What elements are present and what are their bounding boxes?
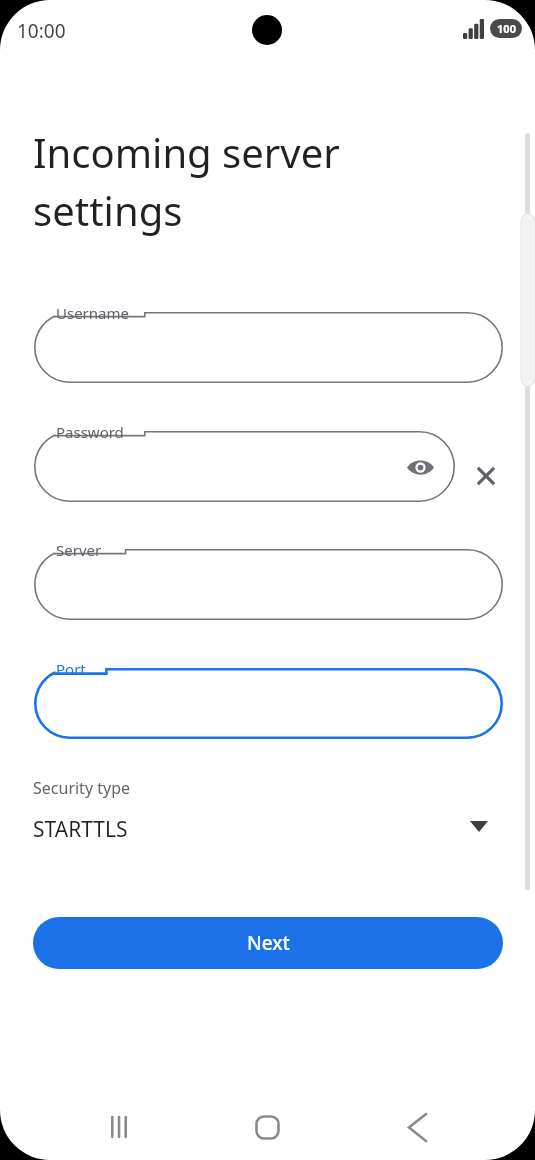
button[interactable]: Password (34, 431, 455, 502)
staticText: Next (247, 930, 290, 956)
staticText: Port (56, 659, 86, 679)
staticText: Incoming server settings (33, 125, 340, 237)
button[interactable]: Home (227, 1087, 307, 1160)
staticText: STARTTLS (33, 815, 128, 844)
staticText: Security type (33, 777, 131, 799)
button[interactable]: Port (34, 668, 503, 739)
button[interactable]: Clear password (465, 455, 507, 497)
button[interactable]: Back (377, 1087, 457, 1160)
button[interactable]: Recent apps (79, 1087, 159, 1160)
button[interactable]: Security type (20, 768, 515, 858)
staticText: 10:00 (17, 18, 66, 44)
staticText: Password (56, 422, 124, 442)
button[interactable]: Server (34, 549, 503, 620)
button[interactable]: Username (34, 312, 503, 383)
button[interactable]: Show password (398, 445, 442, 489)
staticText: 100 (497, 21, 516, 36)
button[interactable]: Next (33, 917, 503, 969)
staticText: Username (56, 303, 129, 323)
staticText: Server (56, 540, 102, 560)
